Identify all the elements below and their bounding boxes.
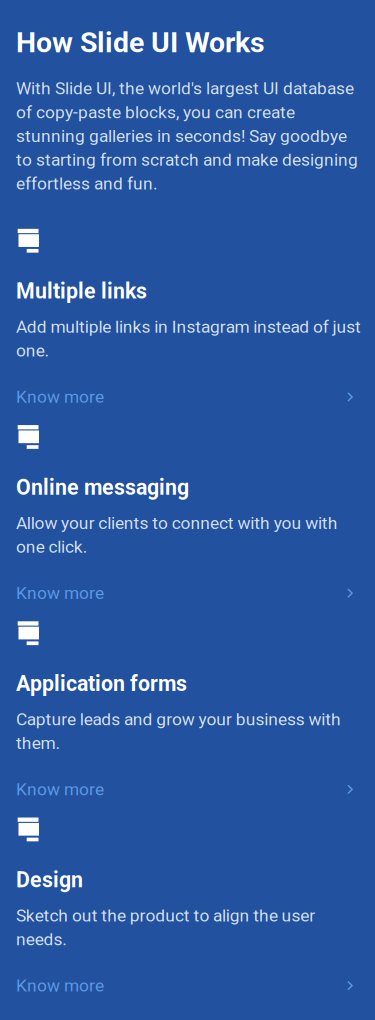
staticText: Sketch out the product to align the user… (16, 905, 315, 949)
staticText: Online messaging (16, 475, 189, 500)
button[interactable]: Know more (16, 769, 359, 809)
staticText: Design (16, 867, 83, 892)
button[interactable]: Know more (16, 377, 359, 417)
staticText: Application forms (16, 671, 187, 696)
staticText: Know more (16, 583, 104, 603)
staticText: With Slide UI, the world's largest UI da… (16, 78, 358, 194)
button[interactable]: Know more (16, 573, 359, 613)
staticText: Know more (16, 975, 104, 996)
staticText: Know more (16, 779, 104, 799)
button[interactable]: Know more (16, 965, 359, 1006)
staticText: Know more (16, 387, 104, 407)
staticText: Add multiple links in Instagram instead … (16, 317, 361, 361)
staticText: How Slide UI Works (16, 26, 265, 59)
staticText: Capture leads and grow your business wit… (16, 709, 341, 753)
staticText: Allow your clients to connect with you w… (16, 513, 338, 557)
staticText: Multiple links (16, 279, 147, 304)
